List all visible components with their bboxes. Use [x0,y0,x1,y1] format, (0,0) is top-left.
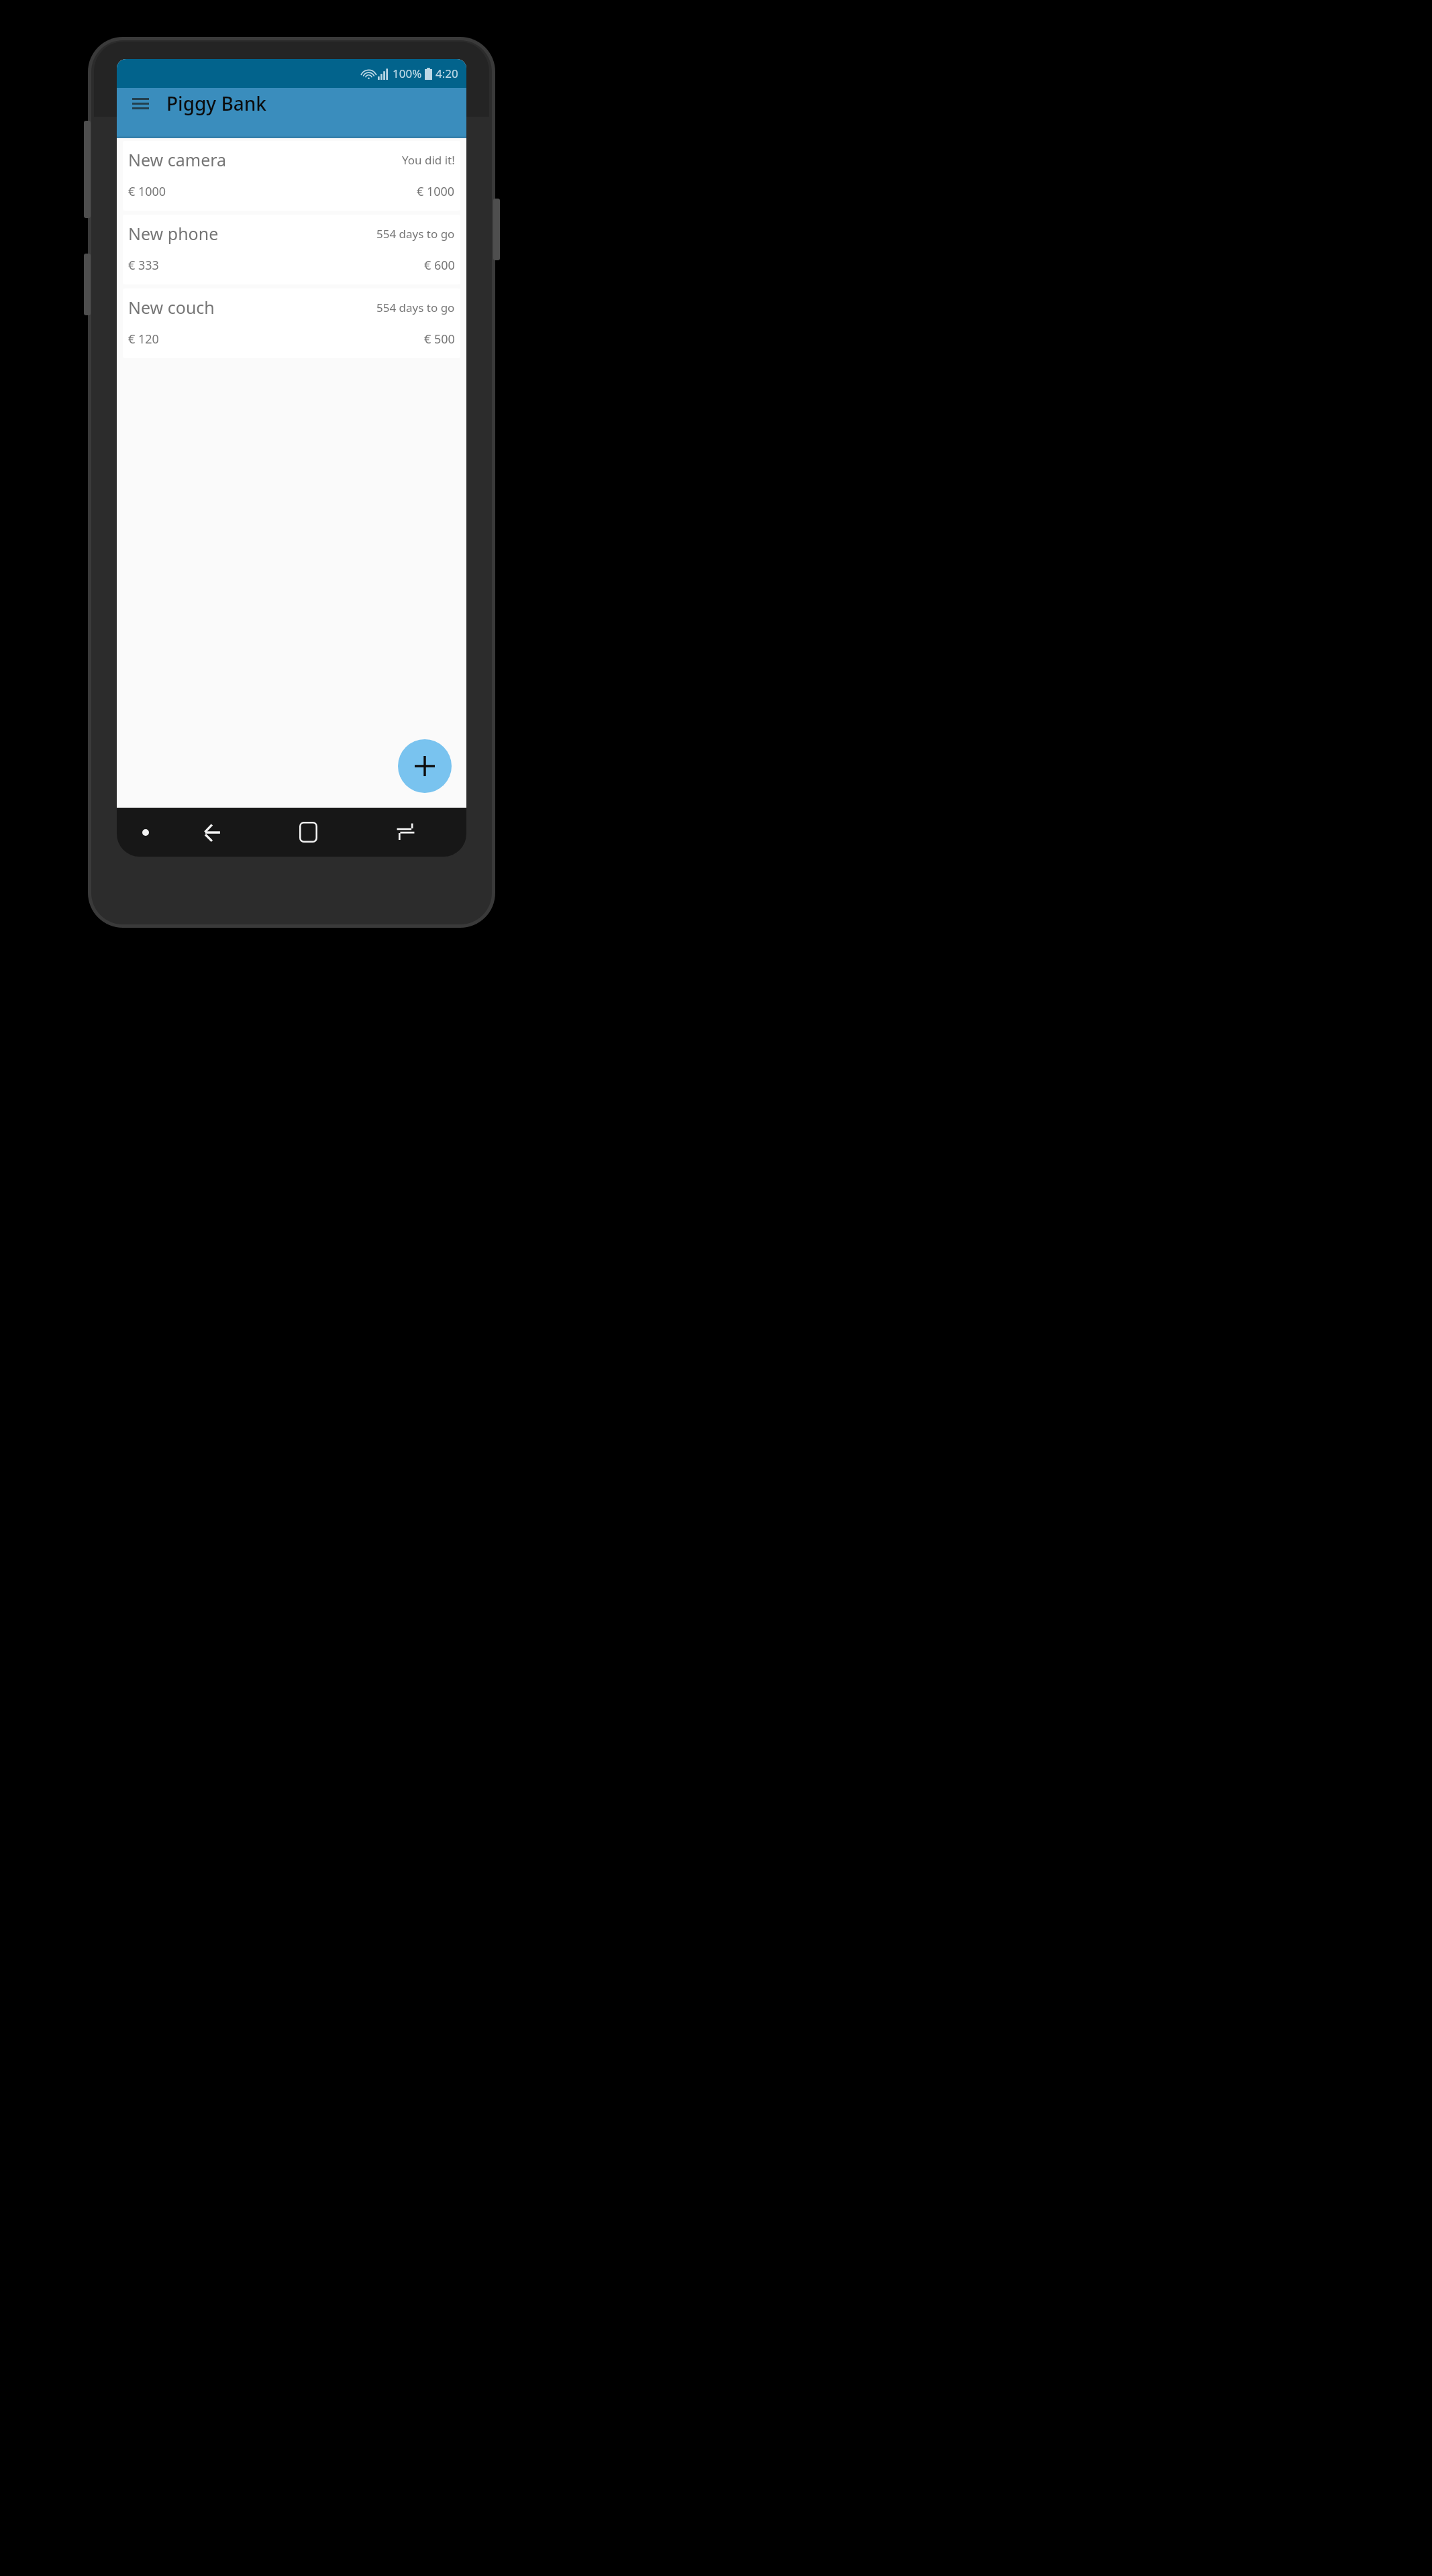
button[interactable]: Back [162,808,260,857]
staticText: € 120 [128,331,159,347]
staticText: 554 days to go [376,300,455,315]
button[interactable]: New couch [123,288,460,358]
staticText: € 333 [128,257,159,274]
staticText: New phone [128,222,219,245]
staticText: New couch [128,296,215,319]
staticText: 4:20 [436,66,458,81]
staticText: 100% [393,66,422,81]
button[interactable]: Home [260,808,357,857]
button[interactable]: New camera [123,141,460,211]
staticText: € 1000 [128,183,166,200]
button[interactable]: Add new savings goal [398,739,452,793]
button[interactable]: Open navigation menu [125,88,156,119]
staticText: New camera [128,148,227,171]
staticText: You did it! [402,152,455,168]
button[interactable]: New phone [123,215,460,284]
staticText: 554 days to go [376,226,455,241]
staticText: € 500 [424,331,455,347]
staticText: Piggy Bank [166,91,266,116]
button[interactable]: Recent apps [357,808,454,857]
staticText: € 600 [424,257,455,274]
staticText: € 1000 [417,183,455,200]
